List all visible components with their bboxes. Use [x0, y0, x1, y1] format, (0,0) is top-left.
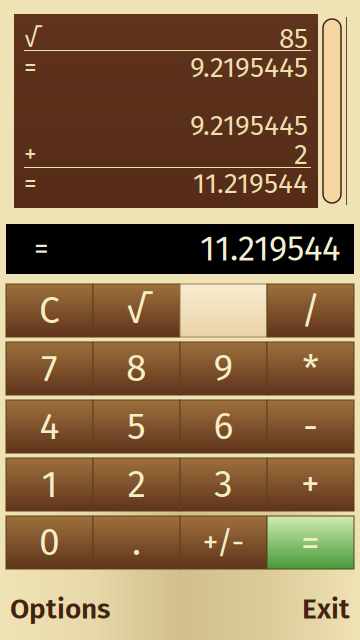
staticText: 8 — [126, 346, 147, 391]
staticText: Exit — [302, 592, 350, 626]
staticText: / — [301, 288, 320, 333]
staticText: - — [303, 404, 318, 449]
button[interactable]: 7 — [6, 342, 93, 395]
button[interactable]: + — [267, 458, 354, 511]
button[interactable]: +/- — [180, 516, 267, 569]
button[interactable]: √ — [93, 284, 180, 337]
staticText: 9 — [213, 346, 233, 391]
staticText: √ — [126, 288, 147, 333]
staticText: 11.219544 — [193, 167, 308, 200]
staticText: + — [24, 139, 37, 170]
staticText: 7 — [41, 346, 58, 391]
staticText: 9.2195445 — [190, 109, 308, 142]
staticText: √ — [24, 23, 38, 54]
staticText: 6 — [213, 404, 233, 449]
staticText: 85 — [279, 22, 308, 55]
staticText: +/- — [202, 523, 244, 562]
staticText: 11.219544 — [200, 228, 340, 270]
button[interactable]: = — [267, 516, 354, 569]
staticText: 0 — [39, 520, 60, 565]
staticText: 3 — [214, 462, 233, 507]
staticText: . — [132, 520, 141, 565]
button[interactable]: Options — [0, 578, 120, 640]
staticText: * — [302, 346, 318, 391]
staticText: Options — [10, 592, 110, 626]
staticText: = — [34, 231, 49, 267]
staticText: 2 — [294, 138, 308, 171]
button[interactable]: 9 — [180, 342, 267, 395]
staticText: 2 — [127, 462, 145, 507]
staticText: 5 — [127, 404, 146, 449]
button[interactable]: 2 — [93, 458, 180, 511]
button[interactable]: - — [267, 400, 354, 453]
button[interactable]: C — [6, 284, 93, 337]
staticText: 9.2195445 — [190, 51, 308, 84]
button[interactable]: 8 — [93, 342, 180, 395]
button[interactable]: Exit — [292, 578, 360, 640]
staticText: + — [301, 462, 320, 507]
staticText: = — [24, 52, 37, 83]
button[interactable]: 3 — [180, 458, 267, 511]
button[interactable]: . — [93, 516, 180, 569]
button[interactable]: 4 — [6, 400, 93, 453]
button[interactable] — [180, 284, 267, 337]
staticText: 4 — [39, 404, 59, 449]
staticText: C — [39, 288, 60, 333]
staticText: 1 — [41, 462, 57, 507]
button[interactable]: 6 — [180, 400, 267, 453]
staticText: = — [301, 520, 320, 565]
staticText: = — [24, 168, 37, 199]
button[interactable]: * — [267, 342, 354, 395]
button[interactable]: 0 — [6, 516, 93, 569]
button[interactable]: 5 — [93, 400, 180, 453]
button[interactable]: / — [267, 284, 354, 337]
button[interactable]: 1 — [6, 458, 93, 511]
